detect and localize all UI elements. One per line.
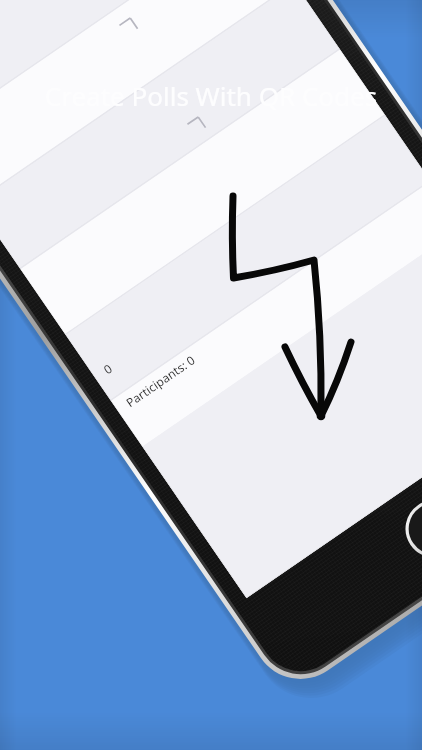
button[interactable]: Create Polls With QR Codes promotional s…	[0, 0, 422, 750]
